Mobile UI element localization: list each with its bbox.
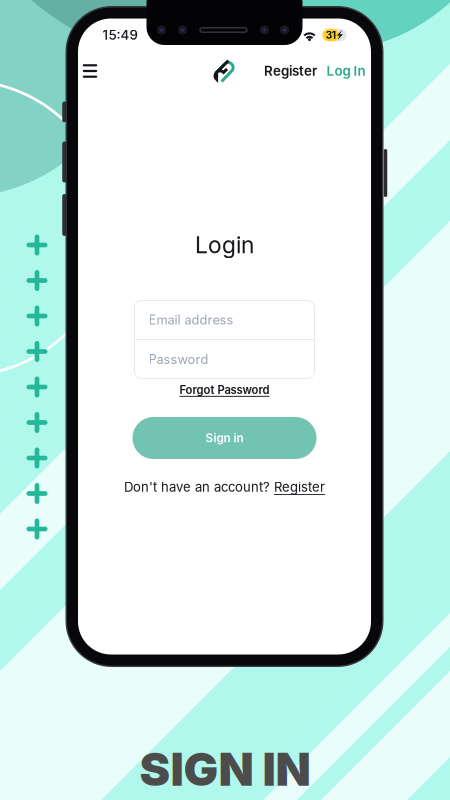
button[interactable]: Password — [134, 340, 314, 378]
staticText: Sign in — [205, 431, 243, 445]
staticText: SIGN IN — [139, 741, 310, 797]
button[interactable]: Sign in — [132, 417, 316, 459]
button[interactable]: Log In — [323, 55, 368, 87]
button[interactable]: Email address — [134, 300, 314, 339]
button[interactable]: Register — [261, 55, 320, 87]
button[interactable]: Don't have an account? — [124, 475, 325, 499]
staticText: Log In — [326, 63, 365, 79]
staticText: Register — [274, 479, 325, 495]
button[interactable]: Menu — [73, 54, 107, 88]
button[interactable]: Forgot Password — [173, 379, 275, 401]
staticText: Login — [195, 231, 254, 259]
staticText: Don't have an account? — [124, 479, 270, 495]
staticText: Register — [264, 63, 317, 79]
staticText: Email address — [148, 312, 233, 327]
staticText: 15:49 — [102, 27, 137, 43]
staticText: Password — [148, 351, 208, 367]
staticText: 31 — [326, 29, 336, 41]
staticText: Forgot Password — [179, 383, 269, 397]
